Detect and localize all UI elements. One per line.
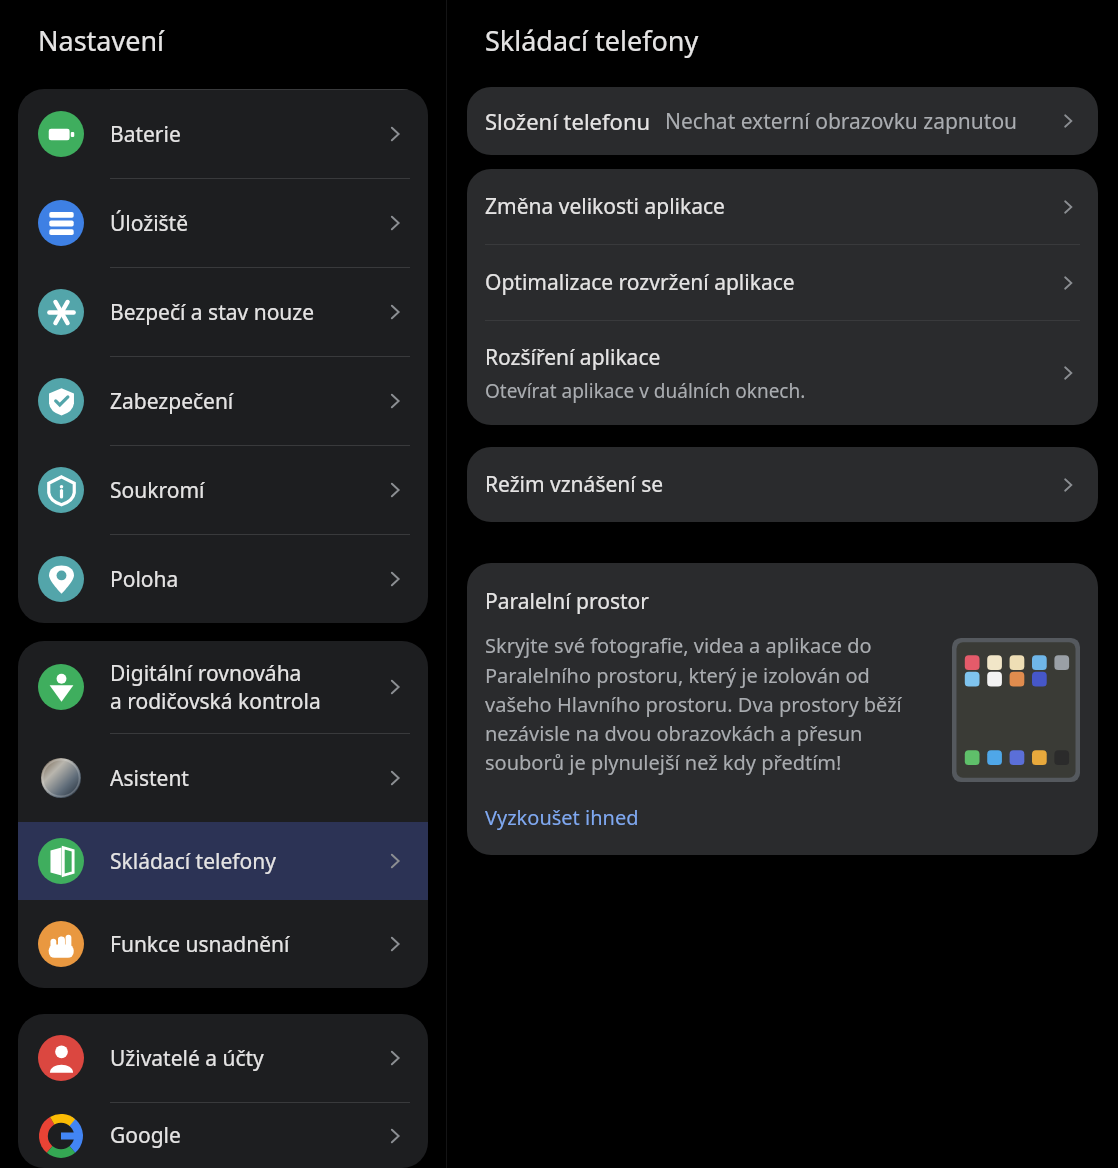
staticText: Rozšíření aplikace (485, 343, 661, 372)
staticText: Bezpečí a stav nouze (110, 298, 382, 327)
staticText: Google (110, 1121, 382, 1150)
button[interactable]: Paralelní prostor (467, 563, 1098, 855)
button[interactable]: Poloha (18, 535, 428, 623)
staticText: Změna velikosti aplikace (485, 192, 725, 221)
staticText: Baterie (110, 120, 382, 149)
button[interactable]: Asistent (18, 734, 428, 822)
staticText: Složení telefonu (485, 106, 651, 136)
staticText: Soukromí (110, 476, 382, 505)
staticText: Režim vznášení se (485, 470, 664, 499)
button[interactable]: Vyzkoušet ihned (485, 804, 639, 831)
button[interactable]: Google (18, 1103, 428, 1168)
button[interactable]: Složení telefonu (467, 87, 1098, 155)
staticText: Uživatelé a účty (110, 1044, 382, 1073)
staticText: Nastavení (38, 22, 165, 59)
button[interactable]: Změna velikosti aplikace (467, 169, 1098, 244)
button[interactable]: Digitální rovnováha a rodičovská kontrol… (18, 641, 428, 733)
staticText: Paralelní prostor (485, 587, 649, 616)
button[interactable]: Optimalizace rozvržení aplikace (467, 245, 1098, 320)
button[interactable]: Soukromí (18, 446, 428, 534)
button[interactable]: Uživatelé a účty (18, 1014, 428, 1102)
staticText: Skryjte své fotografie, videa a aplikace… (485, 632, 934, 776)
button[interactable]: Skládací telefony (18, 822, 428, 900)
staticText: Otevírat aplikace v duálních oknech. (485, 378, 806, 404)
staticText: Asistent (110, 764, 382, 793)
staticText: Digitální rovnováha a rodičovská kontrol… (110, 659, 382, 715)
button[interactable]: Režim vznášení se (467, 447, 1098, 522)
staticText: Nechat externí obrazovku zapnutou (665, 107, 1056, 136)
button[interactable]: Rozšíření aplikace (467, 321, 1098, 425)
button[interactable]: Zabezpečení (18, 357, 428, 445)
button[interactable]: Baterie (18, 90, 428, 178)
button[interactable]: Funkce usnadnění (18, 900, 428, 988)
staticText: Skládací telefony (485, 22, 699, 59)
staticText: Úložiště (110, 209, 382, 238)
staticText: Zabezpečení (110, 387, 382, 416)
staticText: Funkce usnadnění (110, 930, 382, 959)
staticText: Optimalizace rozvržení aplikace (485, 268, 795, 297)
button[interactable]: Úložiště (18, 179, 428, 267)
button[interactable]: Bezpečí a stav nouze (18, 268, 428, 356)
staticText: Poloha (110, 565, 382, 594)
staticText: Skládací telefony (110, 847, 382, 876)
